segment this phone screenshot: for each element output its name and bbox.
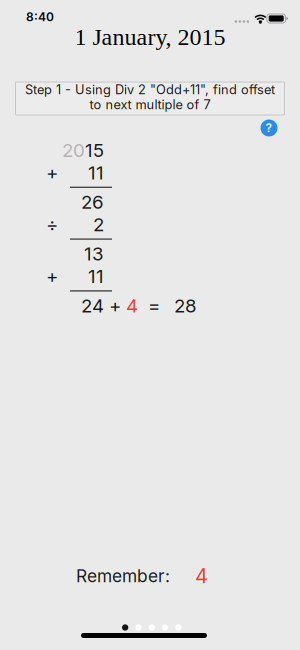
staticText: 15 (85, 139, 104, 161)
staticText: 26 (81, 191, 104, 213)
staticText: Step 1 - Using Div 2 "Odd+11", find offs… (25, 82, 275, 97)
staticText: to next multiple of 7 (89, 97, 210, 112)
staticText: + (46, 265, 58, 287)
staticText: 2 (93, 213, 104, 236)
button[interactable]: Help (256, 117, 282, 139)
staticText: 24 (81, 294, 104, 317)
staticText: + (46, 161, 58, 184)
staticText: Remember: (76, 565, 170, 586)
staticText: = (138, 294, 170, 317)
staticText: 11 (88, 161, 104, 184)
staticText: 1 January, 2015 (74, 24, 225, 50)
staticText: 4 (126, 294, 138, 317)
staticText: ? (265, 121, 272, 135)
staticText: 8:40 (26, 10, 54, 24)
staticText: 13 (84, 242, 104, 265)
staticText: 20 (62, 139, 85, 161)
staticText: + (104, 294, 126, 317)
staticText: 4 (195, 564, 208, 588)
staticText: 11 (88, 265, 104, 287)
staticText: ÷ (46, 213, 58, 236)
staticText: 28 (174, 294, 197, 317)
